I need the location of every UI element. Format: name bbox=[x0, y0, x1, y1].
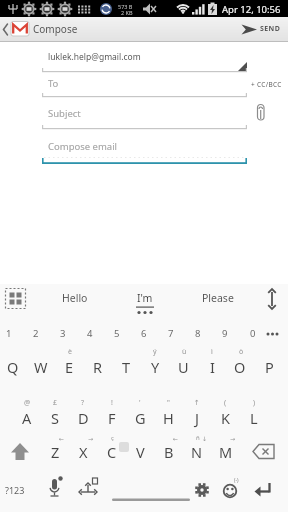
staticText: Compose bbox=[33, 22, 78, 36]
button[interactable]: SEND bbox=[260, 18, 281, 40]
button[interactable]: 2 bbox=[24, 325, 48, 341]
button[interactable] bbox=[250, 100, 270, 126]
button[interactable]: Subject bbox=[48, 102, 81, 124]
button[interactable]: R bbox=[85, 355, 111, 379]
button[interactable]: B bbox=[156, 440, 182, 464]
button[interactable]: H bbox=[155, 406, 181, 430]
staticText: è bbox=[68, 347, 72, 357]
button[interactable]: A bbox=[14, 406, 40, 430]
button[interactable] bbox=[76, 476, 102, 504]
button[interactable] bbox=[8, 440, 34, 464]
staticText: 0 bbox=[250, 327, 256, 340]
staticText: ' bbox=[139, 398, 141, 408]
staticText: £ bbox=[53, 398, 58, 408]
button[interactable]: X bbox=[70, 440, 96, 464]
staticText: G bbox=[135, 408, 146, 428]
button[interactable]: L bbox=[241, 406, 267, 430]
button[interactable]: F bbox=[99, 406, 125, 430]
button[interactable]: Hello bbox=[45, 287, 105, 309]
staticText: ← bbox=[173, 435, 179, 442]
button[interactable]: T bbox=[113, 355, 139, 379]
button[interactable]: 0 bbox=[241, 325, 265, 341]
button[interactable]: C bbox=[99, 440, 125, 464]
button[interactable]: + CC/BCC bbox=[251, 73, 282, 95]
staticText: 2 KB bbox=[121, 9, 133, 16]
button[interactable]: N bbox=[184, 440, 210, 464]
staticText: 6 bbox=[141, 327, 147, 340]
staticText: ← bbox=[59, 435, 65, 442]
button[interactable]: To bbox=[48, 72, 59, 94]
staticText: S bbox=[51, 408, 59, 428]
button[interactable]: G bbox=[127, 406, 153, 430]
button[interactable]: 6 bbox=[132, 325, 156, 341]
button[interactable] bbox=[262, 286, 284, 312]
staticText: Please bbox=[202, 291, 234, 305]
staticText: X bbox=[79, 442, 88, 462]
button[interactable]: 5 bbox=[105, 325, 129, 341]
button[interactable] bbox=[250, 476, 278, 504]
button[interactable]: U bbox=[170, 355, 196, 379]
button[interactable]: O bbox=[227, 355, 253, 379]
button[interactable]: ?123 bbox=[0, 478, 30, 502]
button[interactable]: Z bbox=[42, 440, 68, 464]
button[interactable]: V bbox=[127, 440, 153, 464]
staticText: J bbox=[195, 408, 199, 428]
staticText: I bbox=[210, 357, 215, 377]
staticText: L bbox=[250, 408, 258, 428]
button[interactable]: J bbox=[184, 406, 210, 430]
button[interactable]: Compose email bbox=[48, 135, 118, 157]
staticText: B bbox=[164, 442, 174, 462]
button[interactable]: I'm bbox=[115, 287, 175, 309]
button[interactable]: 3 bbox=[51, 325, 75, 341]
staticText: 2 bbox=[33, 327, 39, 340]
button[interactable]: Please bbox=[188, 287, 248, 309]
staticText: Compose email bbox=[48, 140, 118, 153]
button[interactable]: M bbox=[213, 440, 239, 464]
staticText: (-) bbox=[234, 477, 239, 484]
button[interactable]: luklek.help@gmail.com bbox=[48, 46, 141, 68]
staticText: 9 bbox=[222, 327, 228, 340]
button[interactable]: 4 bbox=[78, 325, 102, 341]
staticText: O bbox=[234, 357, 246, 377]
button[interactable]: K bbox=[212, 406, 238, 430]
button[interactable] bbox=[3, 286, 29, 312]
staticText: 3 bbox=[60, 327, 66, 340]
button[interactable]: 8 bbox=[186, 325, 210, 341]
button[interactable]: E bbox=[56, 355, 82, 379]
staticText: Q bbox=[7, 357, 19, 377]
button[interactable]: S bbox=[42, 406, 68, 430]
button[interactable]: I bbox=[199, 355, 225, 379]
button[interactable] bbox=[250, 440, 278, 464]
staticText: ↓ bbox=[202, 435, 208, 442]
staticText: → bbox=[230, 435, 236, 442]
button[interactable] bbox=[192, 476, 214, 504]
staticText: ! bbox=[111, 398, 113, 408]
button[interactable] bbox=[44, 476, 72, 504]
button[interactable]: Y bbox=[142, 355, 168, 379]
staticText: ?123 bbox=[5, 484, 25, 496]
staticText: K bbox=[221, 408, 230, 428]
staticText: W bbox=[34, 357, 48, 377]
staticText: ↑ bbox=[194, 399, 200, 407]
staticText: D bbox=[78, 408, 89, 428]
button[interactable] bbox=[220, 476, 244, 504]
staticText: E bbox=[65, 357, 74, 377]
staticText: Apr 12, 10:56 bbox=[222, 3, 281, 16]
button[interactable] bbox=[230, 55, 252, 75]
button[interactable]: 9 bbox=[213, 325, 237, 341]
button[interactable]: W bbox=[28, 355, 54, 379]
button[interactable]: Q bbox=[0, 355, 26, 379]
button[interactable]: 1 bbox=[0, 325, 21, 341]
staticText: ) bbox=[253, 398, 256, 408]
staticText: T bbox=[122, 357, 131, 377]
button[interactable]: 7 bbox=[159, 325, 183, 341]
staticText: + CC/BCC bbox=[251, 80, 282, 89]
staticText: 573 B bbox=[118, 3, 133, 10]
button[interactable]: D bbox=[70, 406, 96, 430]
staticText: N bbox=[191, 442, 203, 462]
button[interactable]: P bbox=[256, 355, 282, 379]
staticText: A bbox=[22, 408, 32, 428]
button[interactable] bbox=[108, 476, 194, 504]
button[interactable]: Compose bbox=[33, 18, 78, 40]
staticText: M bbox=[219, 442, 233, 462]
